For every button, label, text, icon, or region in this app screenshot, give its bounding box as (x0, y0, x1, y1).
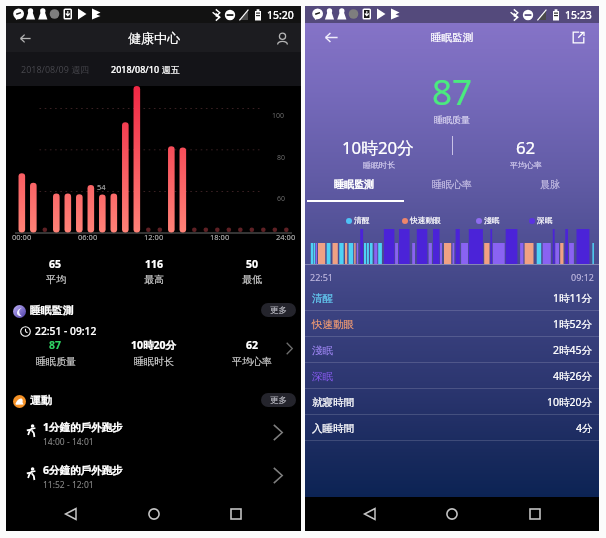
staticText: 11:52 - 12:01 (43, 479, 94, 491)
staticText: 6分鐘的戶外跑步 (43, 463, 123, 477)
staticText: 睡眠质量 (36, 355, 76, 368)
staticText: 入睡時間 (312, 422, 354, 435)
staticText: 22:51 - 09:12 (35, 324, 97, 338)
button[interactable]: 2018/08/09 週四 (21, 63, 90, 75)
staticText: 4時26分 (553, 369, 593, 383)
staticText: 平均心率 (232, 355, 272, 368)
button[interactable]: 睡眠心率 (403, 175, 501, 193)
staticText: 15:23 (565, 8, 592, 22)
staticText: 50 (246, 257, 259, 271)
button[interactable]: 晨脉 (501, 175, 599, 193)
staticText: 最高 (144, 273, 164, 286)
staticText: 更多 (270, 395, 287, 406)
button[interactable]: Home (136, 497, 172, 531)
staticText: 清醒 (312, 292, 333, 305)
button[interactable]: 2018/08/10 週五 (111, 63, 180, 75)
staticText: 80 (277, 153, 286, 163)
staticText: 14:00 - 14:01 (43, 436, 94, 448)
staticText: 87 (49, 338, 62, 352)
staticText: 1時11分 (553, 291, 593, 305)
button[interactable]: 更多 (261, 393, 296, 407)
staticText: 2時45分 (553, 343, 593, 357)
staticText: 睡眠監測 (431, 31, 473, 44)
staticText: 睡眠质量 (305, 114, 599, 125)
staticText: 10時20分 (342, 136, 415, 159)
staticText: 平均心率 (510, 160, 542, 170)
staticText: 健康中心 (128, 30, 180, 46)
staticText: 深眠 (312, 370, 333, 383)
staticText: 睡眠时长 (363, 160, 395, 170)
staticText: 15:20 (267, 8, 294, 22)
staticText: 12:00 (144, 232, 164, 242)
staticText: 65 (49, 257, 62, 271)
staticText: 60 (277, 194, 286, 204)
staticText: 1時52分 (553, 317, 593, 331)
staticText: 62 (516, 136, 536, 159)
button[interactable]: Back (352, 497, 388, 531)
button[interactable]: 就寢時間 (305, 389, 599, 415)
staticText: 清醒 (354, 216, 370, 226)
staticText: 18:00 (210, 232, 230, 242)
staticText: 10時20分 (547, 395, 593, 409)
staticText: 1分鐘的戶外跑步 (43, 420, 123, 434)
button[interactable]: Back (53, 497, 89, 531)
staticText: 更多 (270, 305, 287, 316)
staticText: 06:00 (78, 232, 98, 242)
button[interactable]: Recents (218, 497, 254, 531)
button[interactable]: 睡眠監測 (305, 175, 403, 193)
staticText: 快速動眼 (312, 318, 354, 331)
staticText: 62 (246, 338, 259, 352)
button[interactable]: 清醒 (305, 285, 599, 311)
button[interactable]: 更多 (261, 303, 296, 317)
button[interactable]: 6分鐘的戶外跑步 (6, 457, 301, 493)
button[interactable]: Back (318, 24, 344, 50)
button[interactable]: Recents (517, 497, 553, 531)
staticText: 淺眠 (312, 344, 333, 357)
staticText: 平均 (46, 273, 66, 286)
staticText: 睡眠时长 (134, 355, 174, 368)
staticText: 4分 (576, 421, 593, 435)
button[interactable]: Share (565, 24, 591, 50)
button[interactable]: 淺眠 (305, 337, 599, 363)
staticText: 最低 (242, 273, 262, 286)
staticText: 晨脉 (540, 178, 560, 191)
staticText: 00:00 (12, 232, 32, 242)
staticText: 淺眠 (484, 216, 500, 226)
button[interactable]: Back (12, 25, 38, 51)
staticText: 24:00 (276, 232, 296, 242)
button[interactable]: 睡眠監測 (6, 302, 301, 372)
staticText: 睡眠監測 (30, 304, 74, 318)
staticText: 54 (97, 182, 106, 192)
button[interactable]: 入睡時間 (305, 415, 599, 441)
button[interactable]: 1分鐘的戶外跑步 (6, 414, 301, 450)
staticText: 快速動眼 (410, 216, 441, 226)
staticText: 116 (145, 257, 164, 271)
button[interactable]: Home (434, 497, 470, 531)
staticText: 100 (272, 111, 285, 121)
staticText: 就寢時間 (312, 396, 354, 409)
staticText: 09:12 (571, 271, 595, 283)
button[interactable]: 深眠 (305, 363, 599, 389)
staticText: 10時20分 (131, 338, 177, 352)
button[interactable]: Profile (269, 25, 295, 51)
staticText: 22:51 (310, 271, 334, 283)
staticText: 運動 (30, 394, 52, 408)
staticText: 深眠 (537, 216, 553, 226)
button[interactable]: 快速動眼 (305, 311, 599, 337)
staticText: 87 (305, 68, 599, 116)
staticText: 睡眠心率 (432, 178, 472, 191)
staticText: 睡眠監測 (334, 178, 374, 191)
